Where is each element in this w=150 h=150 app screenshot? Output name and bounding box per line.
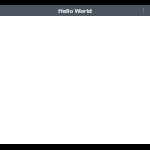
button[interactable]: More options [139,6,148,15]
staticText: Hello World [0,7,150,15]
